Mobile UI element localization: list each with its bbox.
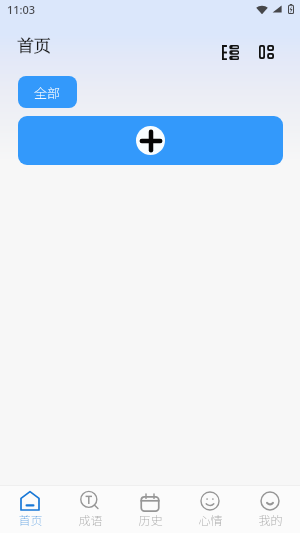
- staticText: 我的: [258, 511, 283, 528]
- staticText: 首页: [18, 511, 43, 528]
- staticText: 心情: [198, 511, 223, 528]
- button[interactable]: 成语: [60, 486, 120, 533]
- button[interactable]: 历史: [120, 486, 180, 533]
- staticText: 历史: [138, 511, 163, 528]
- button[interactable]: Add new item: [18, 116, 283, 165]
- staticText: 全部: [34, 83, 61, 102]
- staticText: 11:03: [7, 2, 36, 17]
- button[interactable]: 全部: [18, 76, 77, 108]
- button[interactable]: Change layout: [252, 38, 280, 66]
- button[interactable]: 心情: [180, 486, 240, 533]
- button[interactable]: 首页: [0, 486, 60, 533]
- button[interactable]: 我的: [240, 486, 300, 533]
- button[interactable]: Categories: [216, 38, 244, 66]
- staticText: 首页: [17, 32, 51, 56]
- staticText: 成语: [78, 511, 103, 528]
